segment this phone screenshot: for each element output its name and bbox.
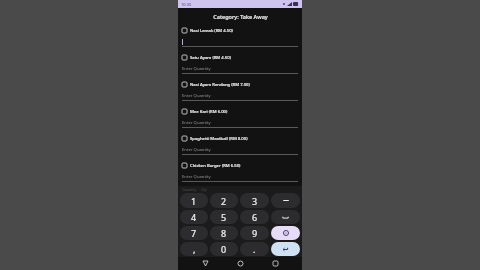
button[interactable]: Emoji (271, 226, 300, 240)
staticText: Enter Quantity (182, 147, 211, 153)
button[interactable]: Home (232, 257, 248, 270)
staticText: Enter Quantity (182, 174, 211, 180)
staticText: Enter Quantity (182, 93, 211, 99)
button[interactable]: 1 (180, 193, 208, 208)
staticText: 6 (252, 211, 258, 223)
button[interactable]: 9 (240, 226, 269, 240)
staticText: 8 (221, 227, 227, 239)
button[interactable]: Enter Quantity (182, 92, 298, 101)
staticText: Spaghetti Meatball (RM 8.00) (190, 136, 248, 142)
staticText: Chicken Burger (RM 6.50) (190, 163, 241, 169)
button[interactable]: Recents (267, 257, 283, 270)
staticText: Satu Ayam (RM 4.50) (190, 55, 231, 61)
staticText: 1 (191, 195, 197, 207)
button[interactable]: Space (271, 210, 300, 224)
button[interactable]: 3 (240, 193, 269, 208)
button[interactable]: Enter Quantity (182, 65, 298, 74)
button[interactable]: 0 (210, 242, 238, 256)
staticText: 0 (221, 243, 227, 255)
button[interactable]: Mee Kari (RM 6.00) (182, 107, 298, 116)
button[interactable]: Nasi Ayam Rendang (RM 7.00) (182, 80, 298, 89)
button[interactable]: 6 (240, 210, 269, 224)
staticText: Nasi Lemak (RM 4.50) (190, 28, 233, 34)
staticText: 7 (191, 227, 197, 239)
button[interactable]: Enter Quantity (182, 119, 298, 128)
staticText: Nasi Ayam Rendang (RM 7.00) (190, 82, 250, 88)
button[interactable]: Chicken Burger (RM 6.50) (182, 161, 298, 170)
button[interactable]: Backspace (271, 193, 300, 208)
staticText: 5 (221, 211, 227, 223)
button[interactable]: 5 (210, 210, 238, 224)
button[interactable]: Nasi Lemak (RM 4.50) (182, 26, 298, 35)
staticText: Quantity (182, 187, 197, 192)
button[interactable]: Satu Ayam (RM 4.50) (182, 53, 298, 62)
staticText: . (253, 243, 256, 255)
button[interactable]: Enter (271, 242, 300, 256)
staticText: Enter Quantity (182, 66, 211, 72)
staticText: 9 (252, 227, 258, 239)
button[interactable]: 8 (210, 226, 238, 240)
button[interactable] (182, 38, 298, 47)
staticText: Qty (201, 187, 207, 192)
button[interactable]: Spaghetti Meatball (RM 8.00) (182, 134, 298, 143)
staticText: 4 (191, 211, 197, 223)
button[interactable]: Back (197, 257, 213, 270)
staticText: Category: Take Away (213, 13, 268, 20)
staticText: Enter Quantity (182, 120, 211, 126)
button[interactable]: 7 (180, 226, 208, 240)
button[interactable]: , (180, 242, 208, 256)
button[interactable]: 2 (210, 193, 238, 208)
staticText: , (193, 243, 196, 255)
staticText: 10:35 (181, 2, 192, 7)
button[interactable]: 4 (180, 210, 208, 224)
button[interactable]: . (240, 242, 269, 256)
button[interactable]: Enter Quantity (182, 173, 298, 182)
staticText: 3 (252, 195, 258, 207)
staticText: 2 (221, 195, 227, 207)
button[interactable]: Enter Quantity (182, 146, 298, 155)
staticText: Mee Kari (RM 6.00) (190, 109, 228, 115)
